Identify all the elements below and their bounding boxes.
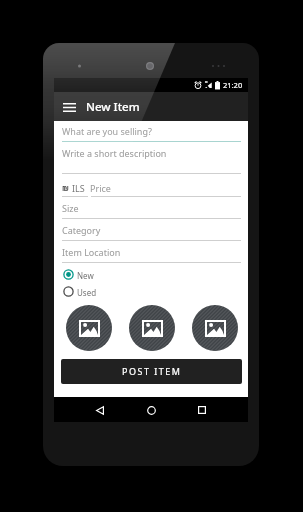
button[interactable]: What are you selling? bbox=[62, 125, 241, 139]
button[interactable]: POST ITEM bbox=[61, 359, 242, 384]
staticText: Category bbox=[62, 224, 101, 236]
button[interactable]: ₪ bbox=[62, 182, 89, 194]
button[interactable]: Add photo bbox=[129, 305, 175, 351]
staticText: ₪ bbox=[62, 183, 69, 193]
staticText: Price bbox=[90, 182, 111, 194]
staticText: ILS bbox=[72, 182, 85, 194]
staticText: Item Location bbox=[62, 246, 121, 258]
staticText: Used bbox=[77, 287, 97, 298]
button[interactable]: Size bbox=[62, 202, 241, 216]
staticText: POST ITEM bbox=[122, 365, 182, 377]
button[interactable]: New bbox=[62, 266, 132, 282]
staticText: 21:20 bbox=[223, 80, 243, 90]
button[interactable]: Add photo bbox=[192, 305, 238, 351]
button[interactable]: Category bbox=[62, 224, 241, 238]
button[interactable]: Write a short description bbox=[62, 147, 241, 161]
staticText: What are you selling? bbox=[62, 125, 152, 137]
staticText: Size bbox=[62, 202, 79, 214]
button[interactable]: Price bbox=[90, 182, 241, 194]
button[interactable]: Home bbox=[143, 402, 159, 418]
staticText: New Item bbox=[86, 99, 140, 115]
button[interactable]: Back bbox=[92, 402, 108, 418]
button[interactable]: Add photo bbox=[66, 305, 112, 351]
button[interactable]: Item Location bbox=[62, 246, 241, 260]
button[interactable]: Open navigation drawer bbox=[58, 96, 80, 118]
staticText: Write a short description bbox=[62, 147, 167, 159]
button[interactable]: Used bbox=[62, 283, 132, 299]
button[interactable]: Recent apps bbox=[194, 402, 210, 418]
staticText: New bbox=[77, 270, 94, 281]
